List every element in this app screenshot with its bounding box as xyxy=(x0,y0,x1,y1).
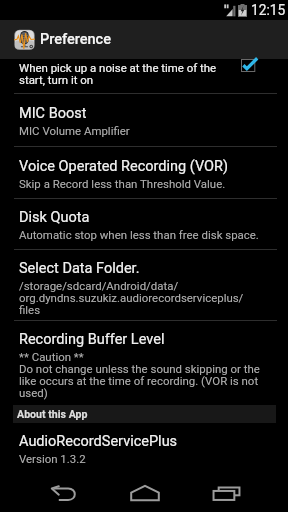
button[interactable]: When pick up a noise at the time of the … xyxy=(0,59,288,93)
staticText: About this App xyxy=(17,408,88,420)
button[interactable]: Select Data Folder. xyxy=(0,250,288,320)
staticText: Preference xyxy=(40,31,111,48)
button[interactable]: MIC Boost xyxy=(0,94,288,146)
button[interactable]: Home xyxy=(104,467,184,512)
staticText: Disk Quota xyxy=(19,209,90,226)
button[interactable]: Recents xyxy=(184,467,288,512)
button[interactable]: Back xyxy=(0,467,104,512)
button[interactable]: Recording Buffer Level xyxy=(0,321,288,405)
button[interactable]: AudioRecordServicePlus xyxy=(0,423,288,467)
staticText: Version 1.3.2 xyxy=(19,452,86,465)
staticText: MIC Volume Amplifier xyxy=(19,124,130,137)
staticText: When pick up a noise at the time of the … xyxy=(19,61,217,87)
staticText: Select Data Folder. xyxy=(19,260,140,277)
staticText: ** Caution ** Do not change unless the s… xyxy=(19,350,260,400)
button[interactable]: Disk Quota xyxy=(0,199,288,249)
staticText: 12:15 xyxy=(251,2,286,18)
staticText: Recording Buffer Level xyxy=(19,331,165,348)
staticText: Skip a Record less than Threshold Value. xyxy=(19,177,226,190)
button[interactable]: Voice Operated Recording (VOR) xyxy=(0,147,288,198)
staticText: Automatic stop when less than free disk … xyxy=(19,228,259,241)
staticText: /storage/sdcard/Android/data/ org.dyndns… xyxy=(19,279,244,317)
staticText: Voice Operated Recording (VOR) xyxy=(19,158,229,175)
staticText: AudioRecordServicePlus xyxy=(19,433,178,450)
staticText: MIC Boost xyxy=(19,105,87,122)
